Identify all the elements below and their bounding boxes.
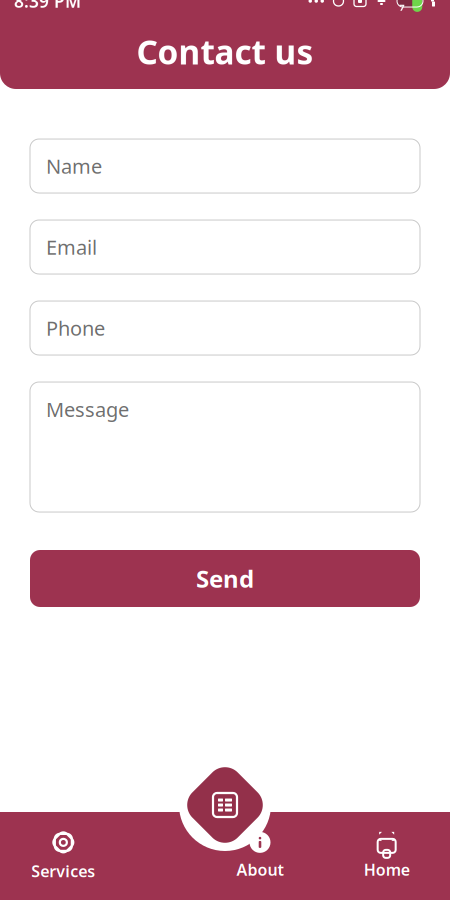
staticText: 8:39 PM bbox=[14, 0, 81, 12]
staticText: About bbox=[236, 859, 283, 880]
staticText: Home bbox=[364, 859, 410, 880]
button[interactable]: Message bbox=[30, 382, 420, 512]
button[interactable]: Email bbox=[30, 220, 420, 274]
staticText: Contact us bbox=[136, 29, 313, 74]
staticText: Send bbox=[196, 563, 254, 594]
button[interactable]: About bbox=[215, 819, 305, 893]
button[interactable]: Send bbox=[30, 550, 420, 607]
staticText: Email bbox=[46, 234, 97, 260]
staticText: 47 bbox=[399, 0, 404, 13]
button[interactable]: Name bbox=[30, 139, 420, 193]
button[interactable]: Catalog bbox=[179, 759, 271, 851]
button[interactable]: Home bbox=[342, 819, 432, 893]
staticText: Message bbox=[46, 396, 129, 423]
button[interactable]: Phone bbox=[30, 301, 420, 355]
staticText: Name bbox=[46, 153, 102, 179]
staticText: Services bbox=[31, 860, 95, 882]
button[interactable]: Services bbox=[18, 819, 108, 893]
staticText: Phone bbox=[46, 315, 105, 341]
